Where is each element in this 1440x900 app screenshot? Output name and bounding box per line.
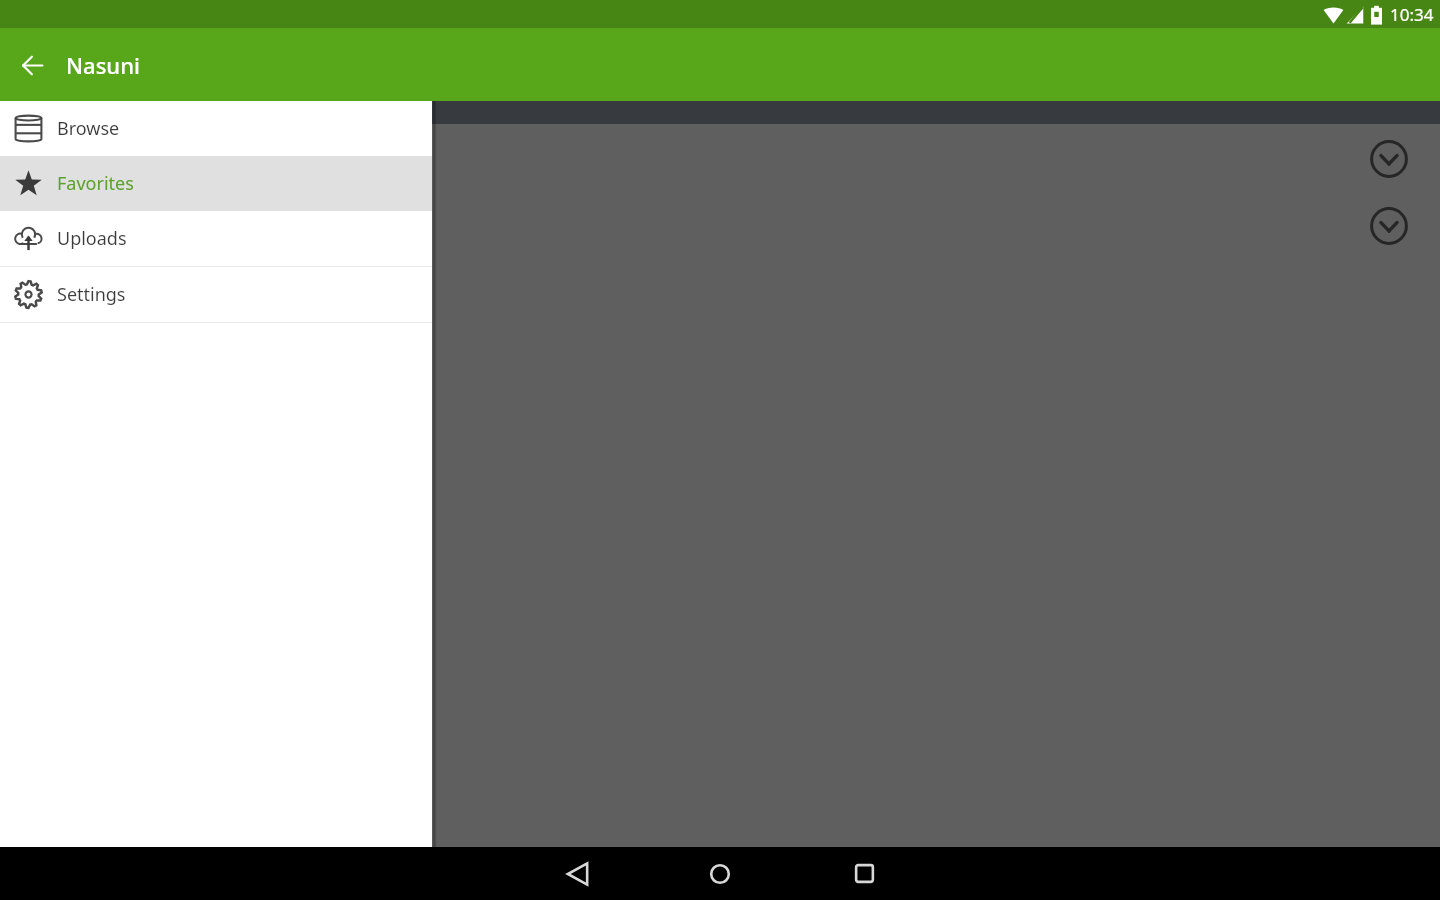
button[interactable]: Browse <box>0 101 432 156</box>
staticText: 10:34 <box>1390 3 1434 26</box>
staticText: Uploads <box>57 226 127 251</box>
button[interactable]: Back <box>14 47 50 83</box>
staticText: Favorites <box>57 171 134 196</box>
button[interactable]: Back <box>553 847 601 900</box>
staticText: Settings <box>57 282 126 307</box>
button[interactable]: Favorites <box>0 156 432 211</box>
button[interactable]: Expand <box>1370 140 1408 178</box>
button[interactable]: Recents <box>840 847 888 900</box>
staticText: Browse <box>57 116 120 141</box>
button[interactable]: Uploads <box>0 211 432 266</box>
button[interactable]: Settings <box>0 267 432 322</box>
staticText: Nasuni <box>66 50 140 80</box>
button[interactable]: Home <box>696 847 744 900</box>
button[interactable]: Expand <box>1370 207 1408 245</box>
